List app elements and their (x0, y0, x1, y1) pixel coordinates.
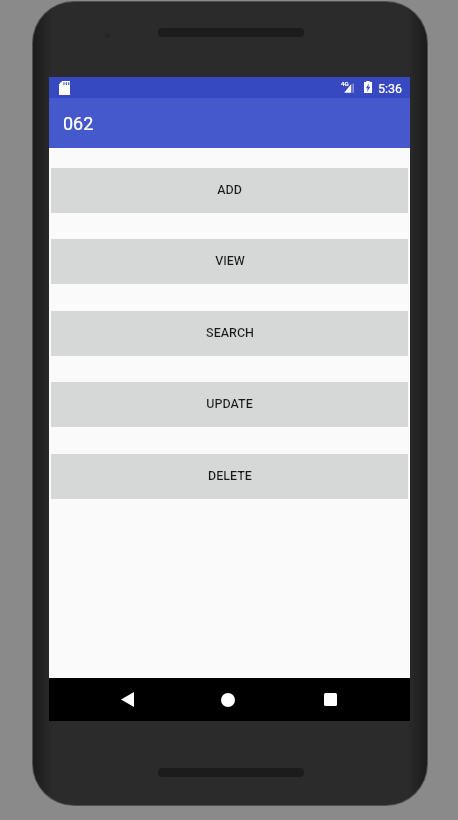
button[interactable]: ADD (51, 168, 408, 213)
staticText: 5:36 (378, 81, 403, 96)
button[interactable]: DELETE (51, 454, 408, 499)
button[interactable]: Home (213, 678, 243, 721)
button[interactable]: 062 (49, 98, 410, 148)
staticText: UPDATE (206, 396, 253, 411)
button[interactable]: VIEW (51, 239, 408, 284)
staticText: ADD (217, 182, 242, 197)
staticText: 4G (341, 80, 349, 87)
staticText: VIEW (215, 253, 245, 268)
staticText: 062 (63, 113, 94, 134)
button[interactable]: Recent apps (315, 678, 345, 721)
button[interactable]: SEARCH (51, 311, 408, 356)
button[interactable]: UPDATE (51, 382, 408, 427)
button[interactable]: Back (112, 678, 142, 721)
staticText: SEARCH (206, 325, 254, 340)
staticText: DELETE (208, 468, 252, 483)
